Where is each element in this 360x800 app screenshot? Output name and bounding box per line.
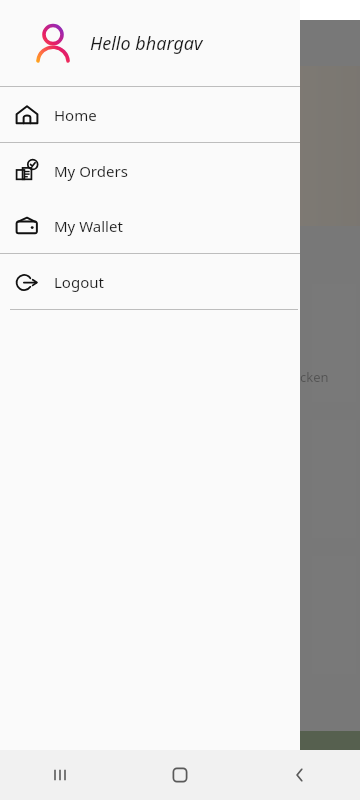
staticText: cken [300, 368, 329, 386]
staticText: My Wallet [54, 216, 123, 236]
staticText: Hello bhargav [90, 31, 203, 56]
button[interactable]: Recent apps [0, 750, 120, 800]
button[interactable]: Back [240, 750, 360, 800]
staticText: My Orders [54, 161, 128, 181]
button[interactable]: Home [120, 750, 240, 800]
button[interactable]: My Orders [0, 143, 300, 198]
button[interactable]: My Wallet [0, 198, 300, 253]
staticText: Home [54, 105, 97, 125]
button[interactable]: Hello bhargav [0, 0, 300, 86]
staticText: Logout [54, 272, 104, 292]
button[interactable]: Home [0, 87, 300, 142]
button[interactable]: Logout [0, 254, 300, 309]
